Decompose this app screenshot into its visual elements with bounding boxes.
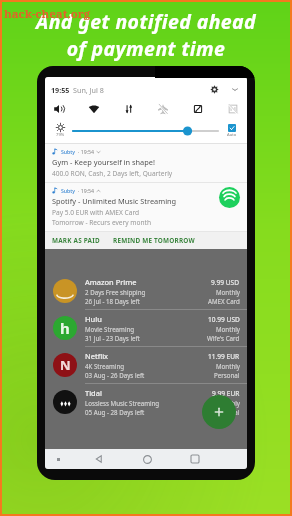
button[interactable]: N — [45, 347, 247, 384]
staticText: Monthly — [216, 325, 240, 333]
staticText: Movie Streaming — [85, 325, 135, 333]
staticText: Tomorrow - Recurs every month — [52, 218, 152, 227]
button[interactable]: Airplane mode off — [155, 101, 171, 117]
staticText: Gym - Keep yourself in shape! — [52, 157, 155, 167]
staticText: Monthly — [216, 288, 240, 296]
button[interactable]: Collapse — [228, 83, 241, 96]
staticText: AMEX Card — [208, 297, 240, 305]
staticText: MARK AS PAID — [52, 236, 100, 245]
staticText: 03 Aug - 26 Days left — [85, 371, 145, 379]
staticText: 79% — [56, 132, 65, 138]
staticText: 4K Streaming — [85, 362, 125, 370]
staticText: Sun, Jul 8 — [73, 85, 104, 95]
button[interactable]: Wi-Fi — [86, 101, 102, 117]
button[interactable]: Back — [91, 451, 107, 467]
button[interactable]: Amazon Prime — [45, 273, 247, 310]
button[interactable]: Add subscription — [202, 395, 236, 429]
staticText: Personal — [214, 408, 240, 416]
staticText: 19:55 — [51, 85, 70, 95]
staticText: Amazon Prime — [85, 277, 137, 287]
staticText: 2 Days Free shipping — [85, 288, 146, 296]
button[interactable]: REMIND ME TOMORROW — [107, 233, 201, 248]
button[interactable]: Settings — [208, 83, 221, 96]
staticText: Hulu — [85, 314, 102, 324]
staticText: hack-cheat.org — [4, 6, 91, 22]
staticText: · 19:54 — [78, 148, 94, 155]
staticText: Monthly — [216, 399, 240, 407]
staticText: And get notified ahead — [0, 8, 292, 35]
staticText: Subty — [61, 187, 76, 194]
staticText: N — [60, 356, 71, 374]
staticText: of payment time — [0, 35, 292, 62]
button[interactable]: Home — [139, 451, 155, 467]
staticText: Subty — [61, 148, 76, 155]
staticText: Spotify - Unlimited Music Streaming — [52, 196, 177, 206]
button[interactable]: Recents — [187, 451, 203, 467]
button[interactable]: Sound — [51, 101, 67, 117]
button[interactable]: h — [45, 310, 247, 347]
staticText: Monthly — [216, 362, 240, 370]
staticText: Personal — [214, 371, 240, 379]
button[interactable]: NFC off — [225, 101, 241, 117]
staticText: 9.99 EUR — [212, 389, 240, 398]
staticText: Pay 5.0 EUR with AMEX Card — [52, 208, 140, 217]
staticText: 400.0 RON, Cash, 2 Days left, Quarterly — [52, 169, 173, 178]
staticText: 31 Jul - 23 Days left — [85, 334, 140, 342]
button[interactable]: MARK AS PAID — [45, 233, 107, 248]
button[interactable]: Auto rotate — [190, 101, 206, 117]
button[interactable]: Subty — [45, 183, 247, 231]
staticText: h — [60, 318, 70, 338]
staticText: · 19:54 — [78, 187, 94, 194]
button[interactable]: Auto brightness — [223, 124, 241, 138]
staticText: Netflix — [85, 351, 109, 361]
button[interactable]: Subty — [45, 144, 247, 182]
staticText: 05 Aug - 28 Days left — [85, 408, 145, 416]
button[interactable]: Tidal — [45, 384, 247, 420]
staticText: Wife's Card — [207, 334, 240, 342]
button[interactable]: Mobile data — [121, 101, 137, 117]
staticText: 10.99 USD — [208, 315, 240, 324]
staticText: 26 Jul - 18 Days left — [85, 297, 140, 305]
staticText: 9.99 USD — [211, 278, 240, 287]
staticText: Lossless Music Streaming — [85, 399, 160, 407]
staticText: REMIND ME TOMORROW — [113, 236, 195, 245]
staticText: Tidal — [85, 388, 102, 398]
button[interactable]: Brightness — [73, 125, 218, 137]
staticText: 11.99 EUR — [208, 352, 240, 361]
staticText: Auto — [227, 132, 237, 138]
